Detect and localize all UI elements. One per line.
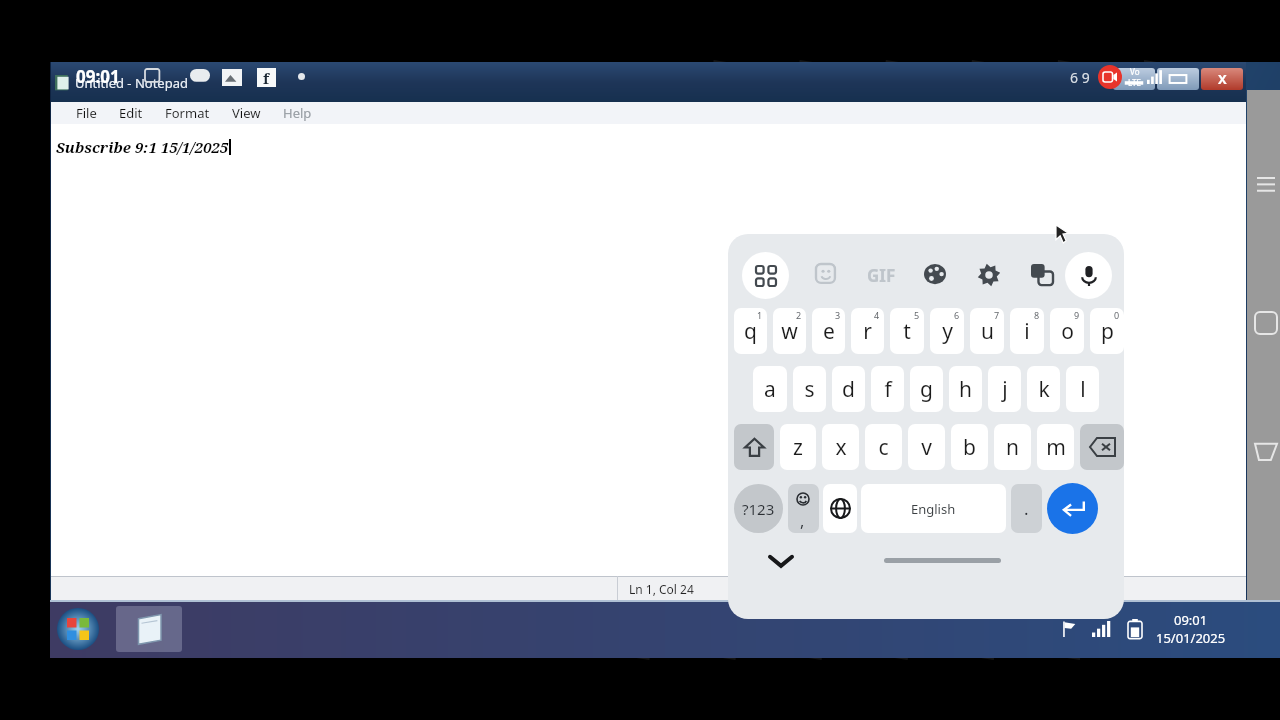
staticText: View [232,104,261,122]
button[interactable]: f [871,366,904,412]
button[interactable]: w [773,308,806,354]
button[interactable]: h [949,366,982,412]
button[interactable]: n [994,424,1031,470]
staticText: c [878,433,889,462]
button[interactable]: g [910,366,943,412]
button[interactable]: a [753,366,787,412]
button[interactable]: Hide keyboard [770,554,792,568]
staticText: o [1061,317,1074,346]
button[interactable]: Settings [968,254,1010,296]
button[interactable]: Home [1255,312,1277,334]
staticText: 6 9 [1070,68,1090,87]
staticText: 9 [1074,309,1080,321]
button[interactable]: Emoji [788,484,819,533]
button[interactable]: e [812,308,845,354]
button[interactable]: Backspace [1080,424,1124,470]
button[interactable]: d [832,366,865,412]
staticText: t [903,317,911,346]
button[interactable]: Action center [1060,620,1078,638]
button[interactable]: Stickers [806,254,848,296]
button[interactable]: View [221,104,272,122]
staticText: X [1218,70,1227,88]
staticText: 3 [835,309,841,321]
button[interactable]: ?123 [734,484,783,533]
button[interactable]: Window button [1157,68,1199,90]
button[interactable]: Enter [1047,483,1098,534]
staticText: k [1038,375,1050,404]
staticText: e [823,317,835,346]
staticText: d [842,375,855,404]
button[interactable]: Themes [914,254,956,296]
staticText: GIF [867,264,896,287]
button[interactable]: Format [154,104,221,122]
button[interactable]: Shift [734,424,774,470]
staticText: LTE [1128,77,1141,88]
button[interactable]: r [851,308,884,354]
button[interactable]: c [865,424,902,470]
button[interactable]: Change language [823,484,857,533]
button[interactable]: Start [57,608,99,650]
staticText: p [1101,317,1114,346]
button[interactable]: m [1037,424,1074,470]
button[interactable]: 09:01 [1156,611,1226,647]
staticText: h [959,375,972,404]
button[interactable]: Help [272,104,323,122]
staticText: y [942,317,953,346]
staticText: l [1080,375,1086,404]
button[interactable]: Back [1255,442,1277,460]
staticText: s [804,375,815,404]
button[interactable]: Voice input [1065,252,1112,299]
staticText: q [744,317,757,346]
button[interactable]: Recents [1257,178,1275,192]
button[interactable]: u [970,308,1004,354]
button[interactable]: . [1011,484,1042,533]
staticText: f [884,375,892,404]
button[interactable]: z [780,424,816,470]
button[interactable]: Network [1092,621,1114,637]
staticText: a [764,375,776,404]
button[interactable]: x [822,424,859,470]
button[interactable]: k [1027,366,1060,412]
button[interactable]: s [793,366,826,412]
staticText: ?123 [742,499,775,519]
staticText: Vo [1130,66,1140,77]
button[interactable]: i [1010,308,1044,354]
button[interactable]: t [890,308,924,354]
staticText: 5 [914,309,920,321]
button[interactable]: Apps [742,252,789,299]
staticText: , [800,510,805,532]
button[interactable]: l [1066,366,1099,412]
staticText: 09:01 [1174,611,1208,629]
staticText: u [981,317,994,346]
button[interactable]: Close [1201,68,1243,90]
staticText: Help [283,104,312,122]
button[interactable]: Battery [1128,619,1142,639]
button[interactable]: File [65,104,108,122]
button[interactable]: English [861,484,1006,533]
button[interactable]: y [930,308,964,354]
button[interactable]: p [1090,308,1124,354]
button[interactable]: Translate [1021,254,1063,296]
button[interactable]: Window button [1113,68,1155,90]
staticText: n [1006,433,1019,462]
staticText: g [920,375,933,404]
button[interactable]: v [908,424,945,470]
staticText: b [963,433,976,462]
staticText: 6 [954,309,960,321]
staticText: 15/01/2025 [1156,629,1226,647]
button[interactable]: o [1050,308,1084,354]
button[interactable]: b [951,424,988,470]
staticText: Subscribe 9:1 15/1/2025 [56,137,229,157]
button[interactable]: q [734,308,767,354]
staticText: z [793,433,803,462]
button[interactable]: GIF [860,254,902,296]
staticText: r [863,317,872,346]
staticText: Edit [119,104,143,122]
staticText: Ln 1, Col 24 [629,581,694,597]
button[interactable]: Edit [108,104,154,122]
staticText: File [76,104,97,122]
button[interactable] [116,606,182,652]
button[interactable]: j [988,366,1021,412]
staticText: English [911,500,956,518]
staticText: j [1002,375,1008,404]
